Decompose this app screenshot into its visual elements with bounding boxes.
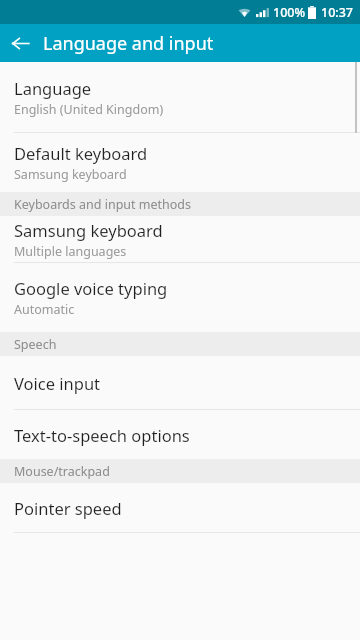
button[interactable]: Pointer speed bbox=[0, 483, 360, 532]
staticText: Automatic bbox=[14, 301, 75, 318]
staticText: Voice input bbox=[14, 372, 101, 394]
staticText: Language and input bbox=[43, 31, 214, 56]
staticText: Default keyboard bbox=[14, 142, 148, 164]
staticText: Google voice typing bbox=[14, 277, 168, 299]
staticText: Keyboards and input methods bbox=[14, 196, 192, 213]
staticText: English (United Kingdom) bbox=[14, 101, 164, 118]
button[interactable]: Default keyboard bbox=[0, 133, 360, 192]
staticText: Multiple languages bbox=[14, 243, 127, 260]
button[interactable]: Google voice typing bbox=[0, 263, 360, 332]
staticText: Mouse/trackpad bbox=[14, 463, 110, 480]
button[interactable]: Navigate up bbox=[0, 24, 40, 62]
button[interactable]: Language bbox=[0, 62, 360, 132]
button[interactable]: Voice input bbox=[0, 356, 360, 409]
staticText: 100% bbox=[273, 4, 306, 21]
staticText: Speech bbox=[14, 336, 57, 353]
staticText: Samsung keyboard bbox=[14, 219, 163, 241]
staticText: Text-to-speech options bbox=[14, 424, 190, 446]
button[interactable]: Samsung keyboard bbox=[0, 216, 360, 262]
button[interactable]: Text-to-speech options bbox=[0, 410, 360, 459]
staticText: 10:37 bbox=[321, 4, 354, 21]
staticText: Pointer speed bbox=[14, 497, 122, 519]
staticText: Language bbox=[14, 77, 92, 99]
staticText: Samsung keyboard bbox=[14, 166, 127, 183]
